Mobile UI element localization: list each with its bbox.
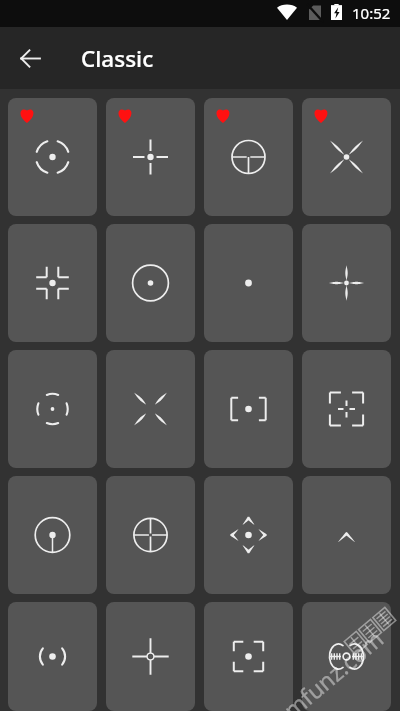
button[interactable]: Crosshair 0 (8, 98, 97, 216)
button[interactable]: Crosshair 7 (302, 224, 391, 342)
button[interactable]: Crosshair 15 (302, 476, 391, 594)
button[interactable]: Crosshair 14 (204, 476, 293, 594)
button[interactable]: Crosshair 4 (8, 224, 97, 342)
button[interactable]: Crosshair 1 (106, 98, 195, 216)
staticText: 10:52 (352, 3, 391, 23)
button[interactable]: Crosshair 16 (8, 602, 97, 711)
button[interactable]: Crosshair 13 (106, 476, 195, 594)
button[interactable]: Crosshair 11 (302, 350, 391, 468)
button[interactable]: Crosshair 17 (106, 602, 195, 711)
button[interactable]: Back (14, 42, 46, 74)
button[interactable]: Crosshair 19 (302, 602, 391, 711)
button[interactable]: Crosshair 3 (302, 98, 391, 216)
button[interactable]: Crosshair 6 (204, 224, 293, 342)
button[interactable]: Crosshair 5 (106, 224, 195, 342)
button[interactable]: Crosshair 12 (8, 476, 97, 594)
staticText: mfunz.com (276, 622, 390, 711)
button[interactable]: Crosshair 10 (204, 350, 293, 468)
button[interactable]: Crosshair 8 (8, 350, 97, 468)
staticText: Classic (81, 43, 154, 74)
button[interactable]: Crosshair 9 (106, 350, 195, 468)
button[interactable]: Crosshair 2 (204, 98, 293, 216)
button[interactable]: Crosshair 18 (204, 602, 293, 711)
